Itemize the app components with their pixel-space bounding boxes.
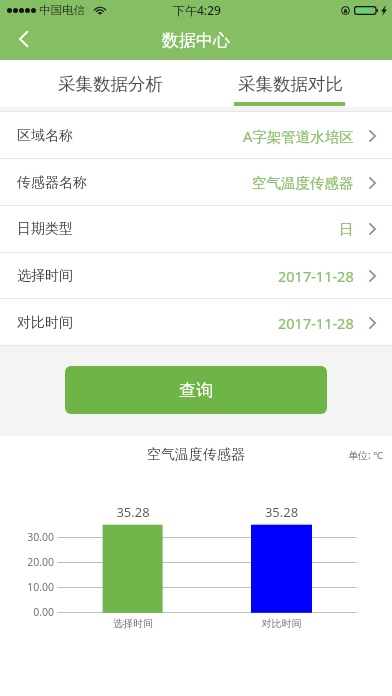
- staticText: 中国电信: [39, 3, 85, 17]
- staticText: 30.00: [10, 530, 54, 544]
- button[interactable]: 对比时间: [0, 299, 392, 346]
- button[interactable]: 采集数据对比: [201, 60, 380, 107]
- staticText: 查询: [179, 380, 213, 401]
- button[interactable]: 查询: [65, 366, 327, 414]
- staticText: 对比时间: [241, 617, 322, 630]
- staticText: 采集数据分析: [58, 73, 163, 95]
- staticText: 下午4:29: [173, 2, 221, 18]
- staticText: 对比时间: [17, 314, 73, 332]
- staticText: 采集数据对比: [238, 73, 343, 95]
- staticText: 单位: ℃: [348, 448, 384, 462]
- staticText: 选择时间: [17, 267, 73, 285]
- button[interactable]: 采集数据分析: [21, 60, 200, 107]
- button[interactable]: 日期类型: [0, 205, 392, 252]
- button[interactable]: 选择时间: [0, 252, 392, 299]
- button[interactable]: 区域名称: [0, 112, 392, 159]
- staticText: 35.28: [103, 503, 163, 521]
- staticText: 选择时间: [93, 617, 173, 630]
- staticText: 日: [339, 220, 354, 238]
- staticText: 2017-11-28: [278, 313, 354, 333]
- staticText: 传感器名称: [17, 174, 87, 192]
- staticText: 日期类型: [17, 220, 73, 238]
- staticText: A字架管道水培区: [243, 126, 354, 146]
- staticText: 10.00: [10, 580, 54, 594]
- staticText: 35.28: [251, 503, 312, 521]
- button[interactable]: 传感器名称: [0, 159, 392, 206]
- staticText: 空气温度传感器: [147, 446, 245, 464]
- staticText: 0.00: [10, 605, 54, 619]
- button[interactable]: 返回: [4, 20, 42, 58]
- staticText: 空气温度传感器: [252, 174, 354, 192]
- staticText: 20.00: [10, 555, 54, 569]
- staticText: 区域名称: [17, 127, 73, 145]
- staticText: 数据中心: [162, 30, 230, 51]
- staticText: 2017-11-28: [278, 266, 354, 286]
